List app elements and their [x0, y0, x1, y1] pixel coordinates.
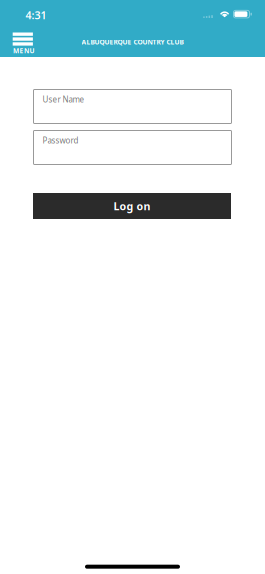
staticText: User Name [42, 94, 84, 105]
staticText: Password [42, 135, 78, 146]
button[interactable]: Menu [1, 29, 47, 57]
staticText: 4:31 [26, 8, 47, 22]
staticText: Log on [113, 199, 150, 213]
staticText: ALBUQUERQUE COUNTRY CLUB [81, 38, 183, 46]
button[interactable]: Log on [33, 193, 231, 219]
staticText: MENU [13, 46, 34, 55]
